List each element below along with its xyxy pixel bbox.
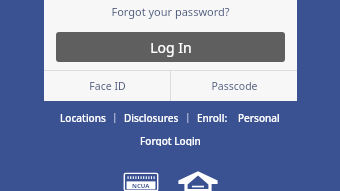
staticText: Disclosures	[124, 111, 179, 122]
button[interactable]: NCUA insured	[122, 171, 160, 191]
button[interactable]: Forgot your password?	[44, 0, 297, 22]
button[interactable]: Face ID	[44, 71, 170, 101]
staticText: Passcode	[211, 79, 258, 93]
button[interactable]: Passcode	[171, 71, 297, 101]
button[interactable]: Personal	[235, 110, 283, 123]
staticText: Enroll:	[197, 111, 228, 122]
button[interactable]: Forgot Login	[136, 133, 205, 147]
staticText: Locations	[60, 111, 106, 122]
button[interactable]: Log In	[56, 32, 285, 62]
button[interactable]: Enroll:	[194, 110, 231, 123]
staticText: Forgot Login	[140, 134, 201, 146]
staticText: Face ID	[89, 79, 126, 93]
staticText: Forgot your password?	[111, 4, 230, 19]
button[interactable]: Equal Housing Lender	[178, 169, 218, 191]
staticText: Personal	[238, 111, 280, 122]
button[interactable]: Locations	[57, 110, 109, 123]
staticText: |	[185, 110, 191, 123]
staticText: |	[112, 110, 118, 123]
staticText: Log In	[150, 38, 192, 57]
button[interactable]: Disclosures	[121, 110, 182, 123]
staticText: NCUA	[132, 182, 150, 190]
